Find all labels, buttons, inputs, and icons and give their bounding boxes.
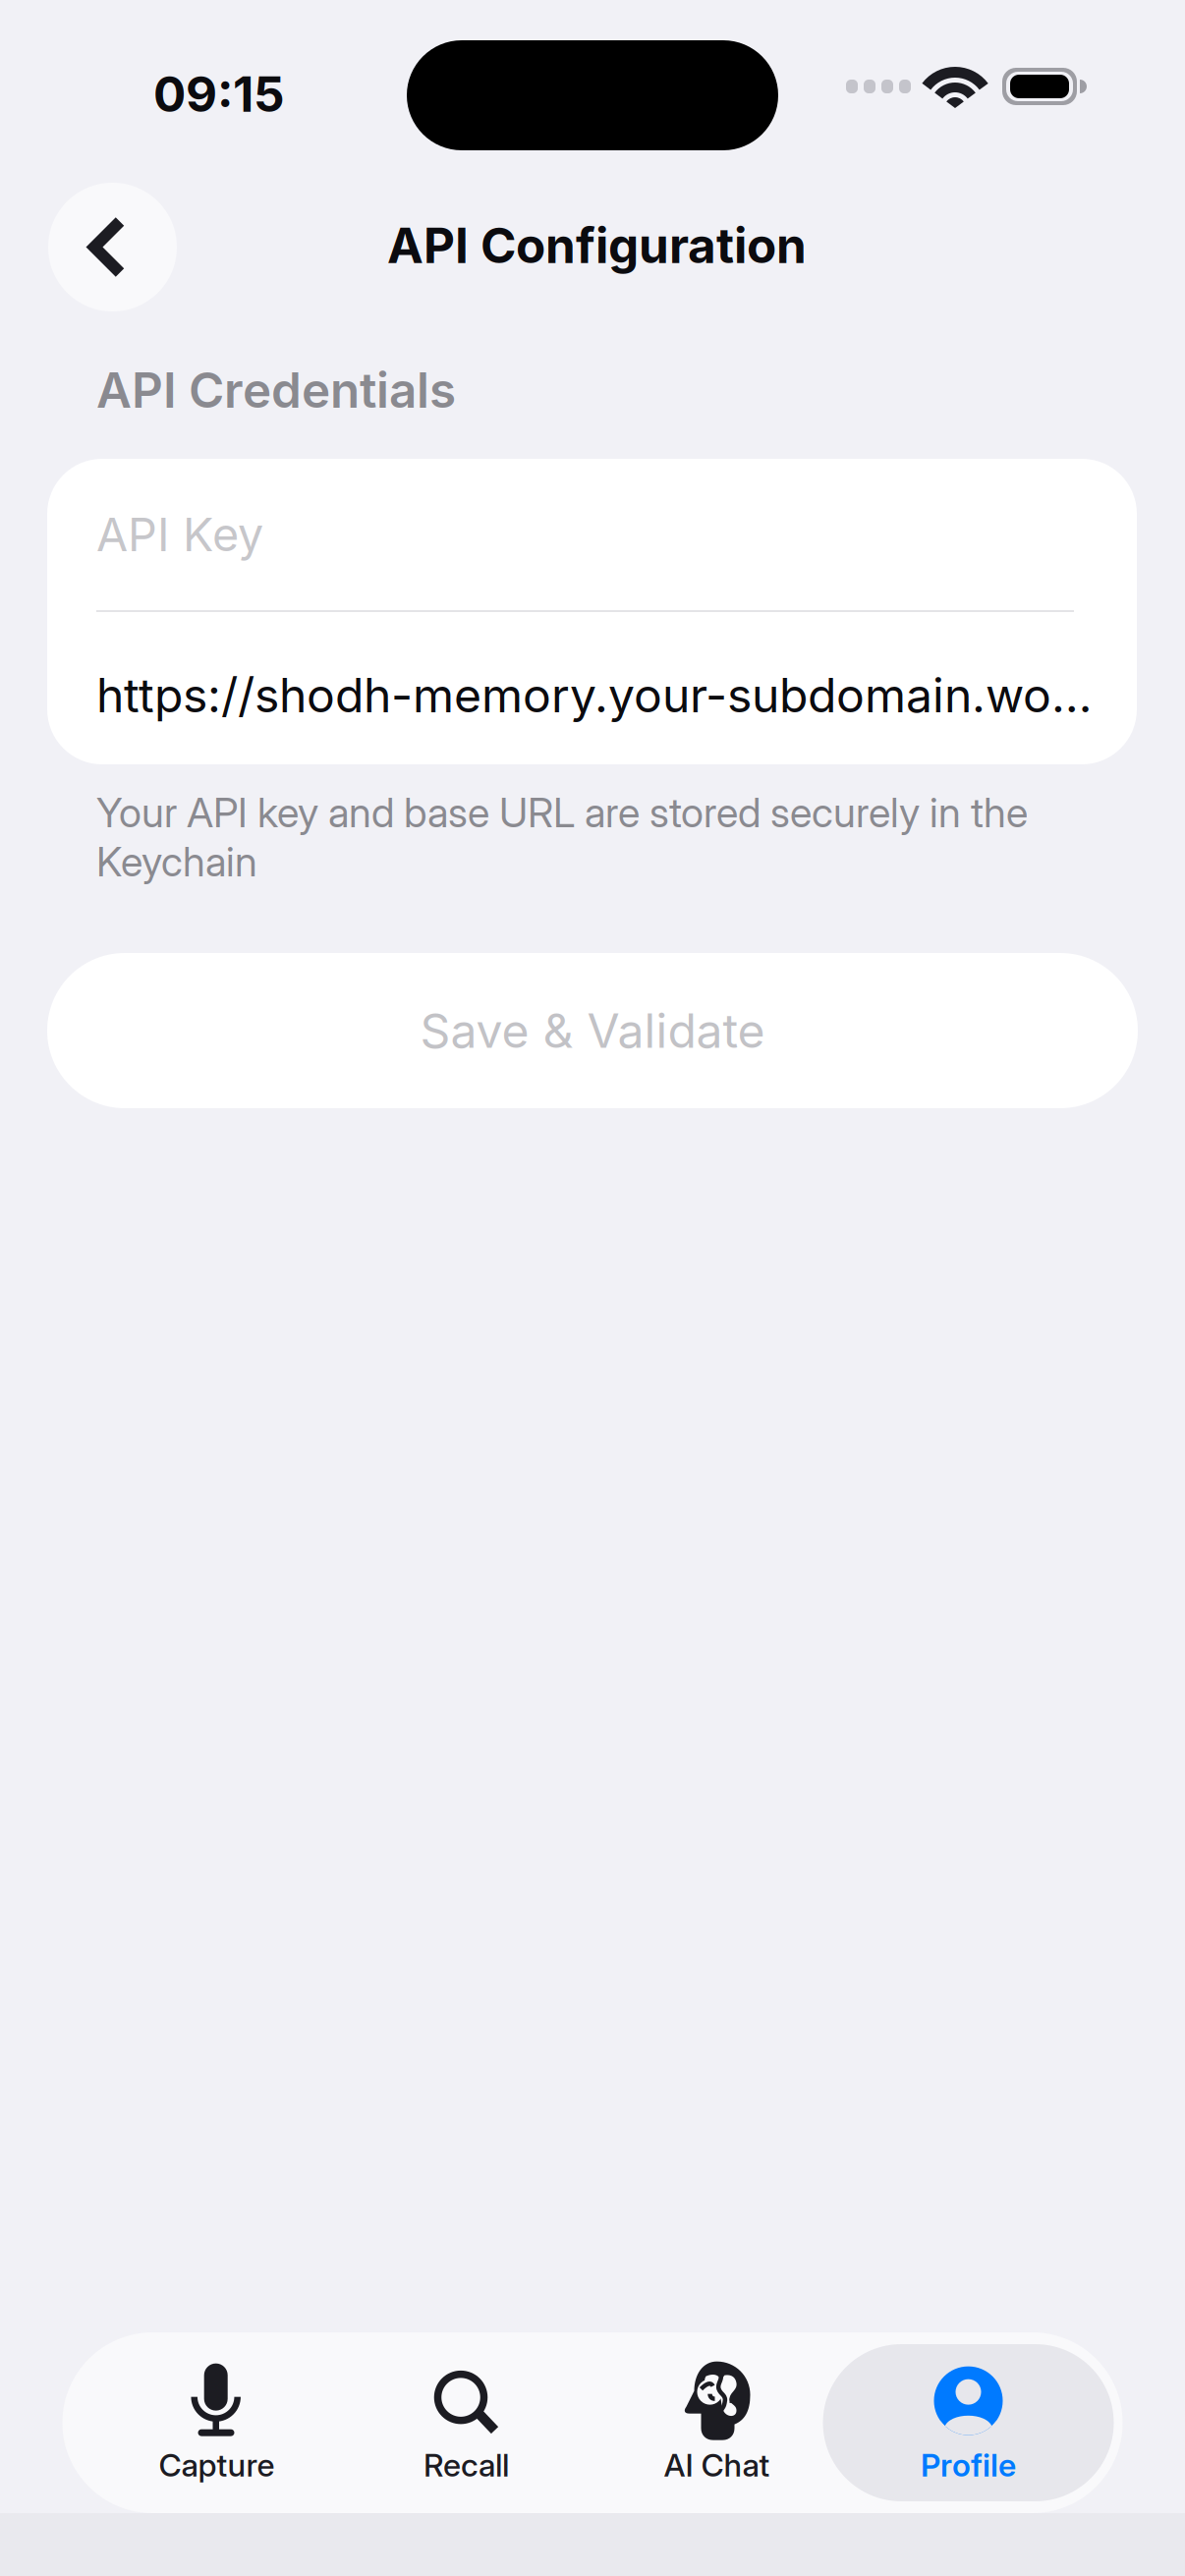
button[interactable]: Back <box>48 183 177 311</box>
staticText: AI Chat <box>664 2446 770 2484</box>
staticText: API Key <box>96 507 263 562</box>
staticText: Profile <box>921 2446 1016 2484</box>
staticText: Capture <box>159 2446 275 2484</box>
staticText: API Credentials <box>96 361 456 419</box>
button[interactable]: Save & Validate <box>47 953 1138 1108</box>
button[interactable]: AI Chat <box>604 2344 830 2501</box>
staticText: Your API key and base URL are stored sec… <box>96 788 1028 886</box>
staticText: Save & Validate <box>420 1002 765 1059</box>
button[interactable]: Capture <box>104 2344 330 2501</box>
staticText: 09:15 <box>153 65 285 123</box>
button[interactable]: Recall <box>353 2344 579 2501</box>
staticText: https://shodh-memory.your-subdomain.wo… <box>96 667 1092 724</box>
button[interactable]: Profile <box>823 2344 1114 2501</box>
staticText: Recall <box>423 2446 509 2484</box>
staticText: API Configuration <box>387 216 807 275</box>
